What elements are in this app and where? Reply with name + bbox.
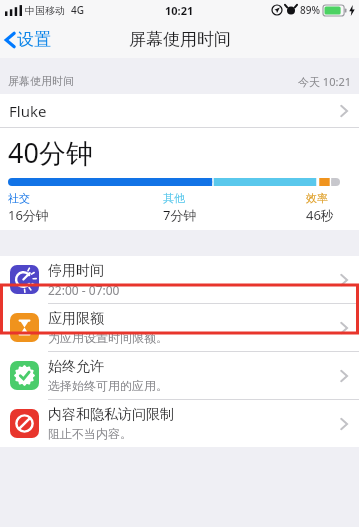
staticText: 中国移动 [25, 4, 65, 17]
button[interactable]: 停用时间 [0, 256, 359, 303]
staticText: 16分钟 [8, 206, 49, 224]
staticText: 停用时间 [48, 262, 104, 280]
staticText: 22:00 - 07:00 [48, 282, 120, 298]
staticText: 屏幕使用时间 [8, 74, 74, 88]
button[interactable]: 内容和隐私访问限制 [0, 400, 359, 447]
staticText: 其他 [163, 191, 185, 205]
staticText: 7分钟 [163, 206, 197, 224]
staticText: 社交 [8, 191, 30, 205]
staticText: 选择始终可用的应用。 [48, 378, 168, 393]
staticText: 内容和隐私访问限制 [48, 406, 174, 424]
staticText: 始终允许 [48, 358, 104, 376]
staticText: 设置 [17, 29, 51, 50]
staticText: 应用限额 [48, 310, 104, 328]
button[interactable]: 设置 [0, 25, 59, 54]
staticText: 阻止不当内容。 [48, 426, 132, 441]
staticText: Fluke [9, 101, 47, 121]
staticText: 10:21 [165, 3, 194, 18]
staticText: 今天 10:21 [298, 74, 351, 89]
staticText: 40分钟 [8, 134, 93, 171]
button[interactable]: Fluke [0, 94, 359, 127]
staticText: 屏幕使用时间 [129, 29, 231, 50]
button[interactable]: 始终允许 [0, 352, 359, 399]
staticText: 为应用设置时间限额。 [48, 330, 168, 345]
staticText: 4G [71, 3, 84, 17]
staticText: 效率 [306, 191, 328, 205]
staticText: 89% [300, 3, 320, 17]
staticText: 46秒 [306, 206, 334, 224]
button[interactable]: 应用限额 [0, 304, 359, 351]
